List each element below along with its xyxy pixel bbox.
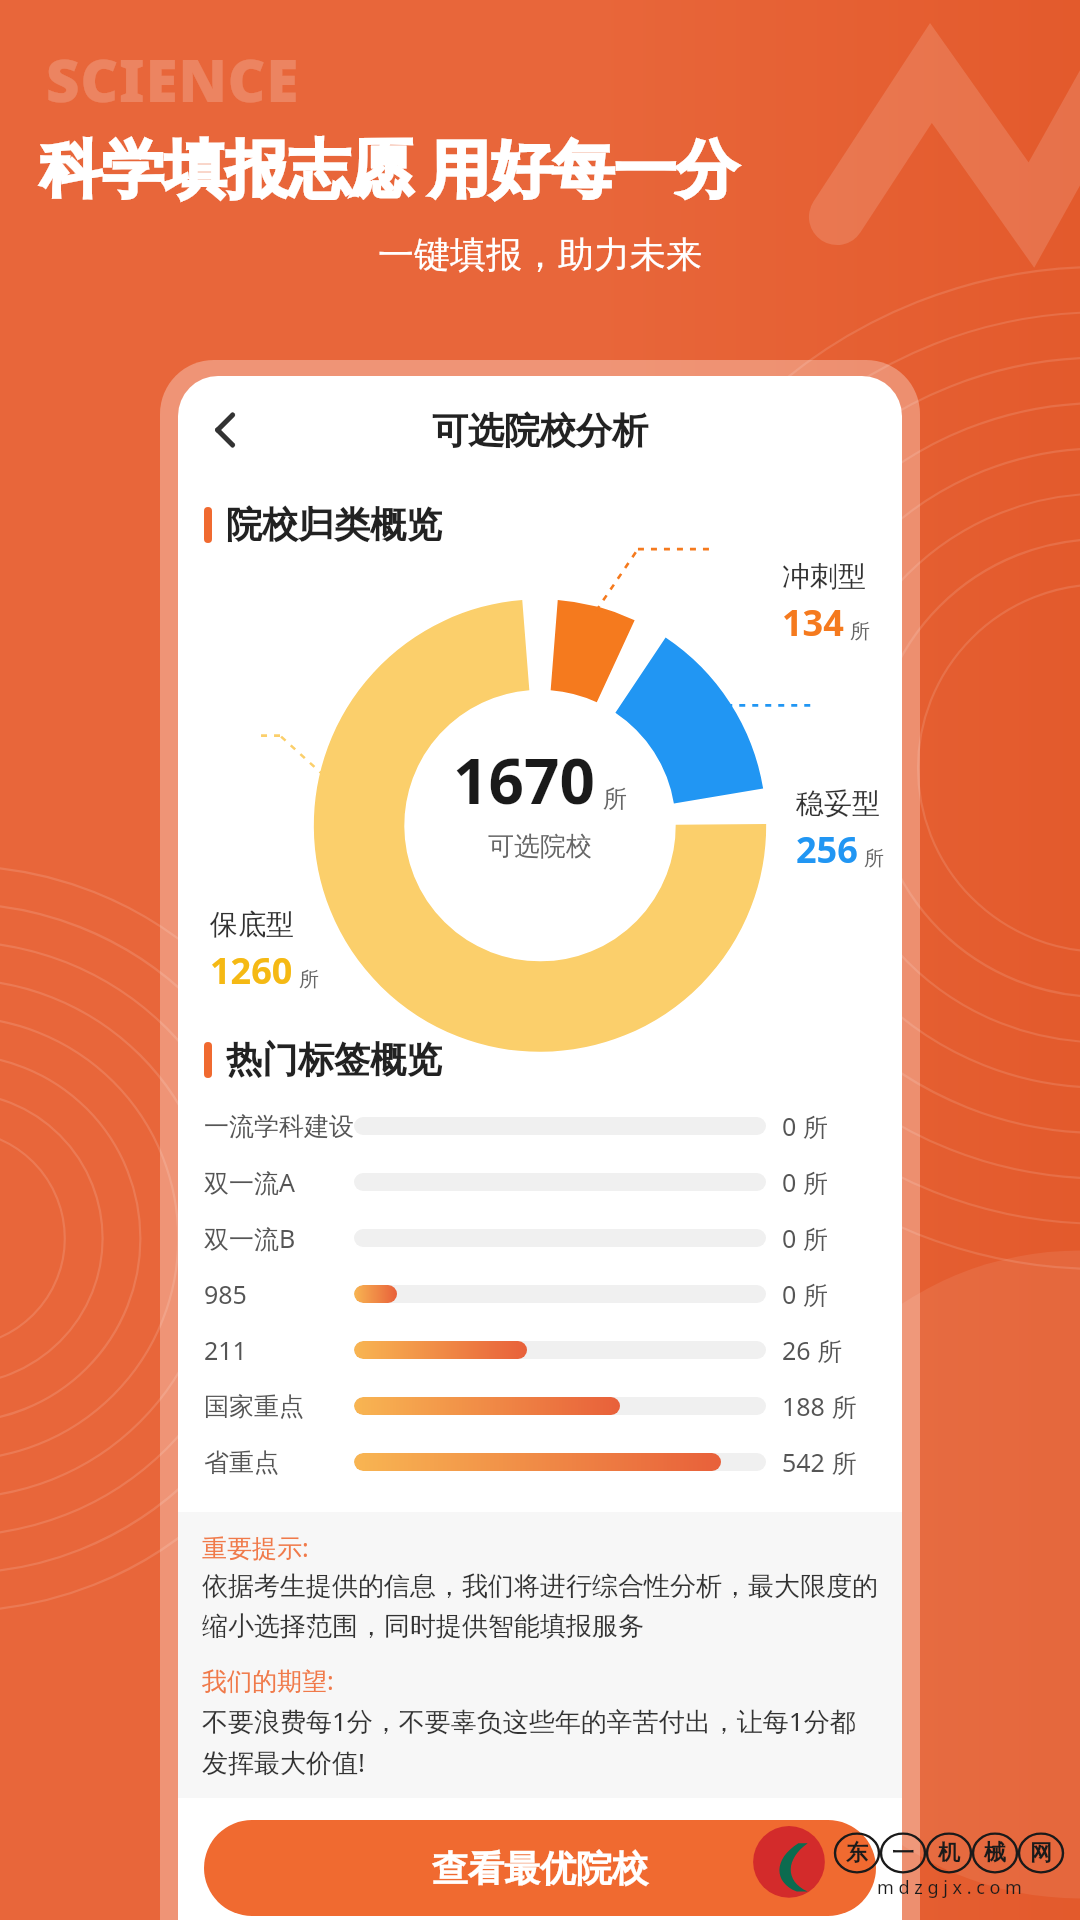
staticText: 保底型: [210, 907, 294, 942]
staticText: 查看最优院校: [432, 1846, 648, 1891]
staticText: 0 所: [782, 1277, 876, 1311]
staticText: 一键填报，助力未来: [378, 232, 702, 277]
staticText: 所: [864, 846, 884, 871]
staticText: 不要浪费每1分，不要辜负这些年的辛苦付出，让每1分都发挥最大价值!: [202, 1703, 878, 1780]
staticText: 械: [984, 1839, 1006, 1867]
staticText: 134: [782, 598, 844, 647]
staticText: 985: [204, 1277, 354, 1311]
staticText: 一流学科建设: [204, 1111, 354, 1142]
staticText: 国家重点: [204, 1391, 354, 1422]
staticText: 双一流B: [204, 1221, 354, 1255]
staticText: 所: [603, 784, 627, 814]
staticText: 256: [796, 825, 858, 874]
staticText: 院校归类概览: [226, 502, 442, 547]
staticText: 可选院校分析: [432, 408, 648, 453]
staticText: 1260: [210, 946, 293, 995]
staticText: m d z g j x . c o m: [877, 1875, 1022, 1900]
staticText: 1670: [453, 738, 595, 822]
staticText: 所: [850, 619, 870, 644]
staticText: 211: [204, 1333, 354, 1367]
staticText: 冲刺型: [782, 559, 866, 594]
staticText: 重要提示:: [202, 1530, 309, 1564]
button[interactable]: Back: [188, 392, 264, 468]
staticText: 我们的期望:: [202, 1663, 334, 1697]
staticText: 一: [892, 1839, 914, 1867]
staticText: 542 所: [782, 1445, 876, 1479]
staticText: 东: [846, 1839, 868, 1867]
staticText: 网: [1030, 1839, 1052, 1867]
staticText: 稳妥型: [796, 786, 880, 821]
staticText: 0 所: [782, 1221, 876, 1255]
staticText: 可选院校: [488, 830, 592, 863]
staticText: 机: [938, 1839, 960, 1867]
staticText: 188 所: [782, 1389, 876, 1423]
staticText: 26 所: [782, 1333, 876, 1367]
staticText: 科学填报志愿 用好每一分: [40, 125, 739, 210]
staticText: SCIENCE: [46, 40, 300, 119]
button[interactable]: 查看最优院校: [204, 1820, 876, 1916]
staticText: 双一流A: [204, 1165, 354, 1199]
staticText: 依据考生提供的信息，我们将进行综合性分析，最大限度的缩小选择范围，同时提供智能填…: [202, 1570, 878, 1643]
staticText: 0 所: [782, 1109, 876, 1143]
staticText: 所: [299, 967, 319, 992]
staticText: 0 所: [782, 1165, 876, 1199]
staticText: 热门标签概览: [226, 1037, 442, 1082]
staticText: 省重点: [204, 1447, 354, 1478]
